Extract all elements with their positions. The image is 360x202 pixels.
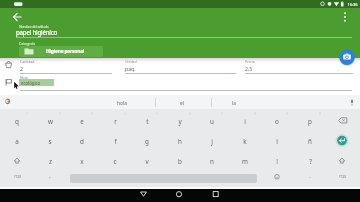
staticText: 9 [286, 112, 288, 116]
staticText: , [49, 172, 51, 180]
staticText: 0 [319, 112, 321, 116]
staticText: ! [276, 157, 278, 166]
staticText: e [80, 117, 84, 126]
staticText: ? [309, 157, 312, 166]
staticText: 4 [124, 112, 126, 116]
staticText: Nombre del artículo [19, 24, 49, 29]
staticText: 5 [156, 112, 158, 116]
staticText: la [232, 100, 236, 107]
staticText: ñ [308, 137, 312, 146]
staticText: j [211, 137, 213, 146]
staticText: Unidad [125, 59, 137, 64]
staticText: f [114, 137, 117, 146]
staticText: hola [117, 100, 127, 107]
staticText: x [80, 157, 84, 166]
staticText: Nota [20, 75, 28, 80]
staticText: ?123 [14, 175, 21, 179]
staticText: u [210, 117, 214, 126]
staticText: 8 [254, 112, 256, 116]
staticText: 2,5 [245, 65, 253, 72]
staticText: 1 [26, 112, 28, 116]
staticText: q [15, 117, 19, 126]
staticText: papel higiénico [16, 28, 57, 36]
staticText: v [145, 157, 149, 166]
staticText: w [48, 117, 53, 126]
staticText: . [309, 172, 311, 180]
staticText: b [178, 157, 182, 166]
staticText: c [113, 157, 117, 166]
staticText: paq. [125, 65, 136, 72]
staticText: o [275, 117, 279, 126]
staticText: a [15, 137, 19, 146]
staticText: z [49, 157, 52, 166]
staticText: 7 [221, 112, 223, 116]
staticText: 6 [189, 112, 191, 116]
staticText: 2 [20, 65, 23, 72]
staticText: m [242, 157, 248, 166]
staticText: k [243, 137, 247, 146]
staticText: 3 [91, 112, 93, 116]
staticText: Cantidad [20, 59, 35, 64]
staticText: ecológico [21, 80, 41, 86]
staticText: Categoría [19, 41, 35, 46]
staticText: h [178, 137, 182, 146]
staticText: Precio [245, 59, 255, 64]
staticText: t [146, 117, 149, 126]
staticText: 2 [59, 112, 61, 116]
staticText: y [178, 117, 182, 126]
staticText: g [145, 137, 149, 146]
staticText: l [276, 137, 278, 146]
staticText: 16:36 [347, 2, 358, 7]
staticText: i [244, 117, 246, 126]
staticText: ?123 [339, 175, 346, 179]
staticText: d [80, 137, 84, 146]
staticText: el [180, 100, 184, 107]
staticText: r [114, 117, 117, 126]
staticText: p [308, 117, 312, 126]
staticText: Higiene personal [46, 48, 85, 55]
staticText: s [48, 137, 52, 146]
staticText: n [210, 157, 214, 166]
